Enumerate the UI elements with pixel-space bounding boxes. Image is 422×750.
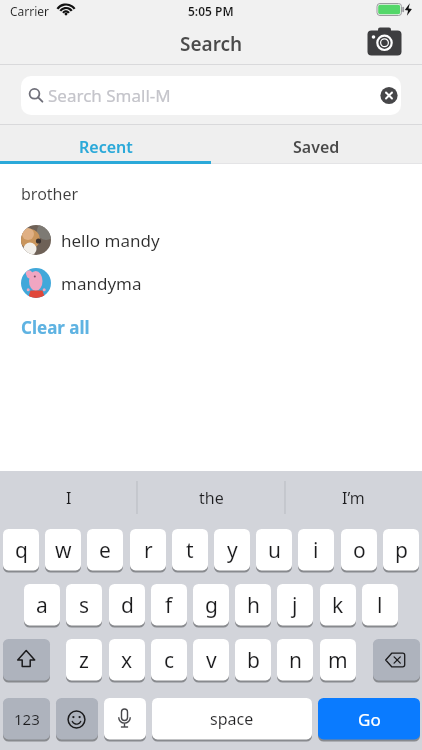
staticText: Carrier <box>10 3 50 19</box>
staticText: I <box>66 487 72 509</box>
button[interactable]: 123 <box>3 698 50 740</box>
button[interactable]: k <box>320 584 356 626</box>
button[interactable]: the <box>137 471 285 525</box>
button[interactable]: d <box>109 584 145 626</box>
button[interactable]: Clear all <box>21 316 141 338</box>
staticText: p <box>395 536 408 565</box>
staticText: h <box>247 591 260 620</box>
staticText: m <box>328 646 348 675</box>
button[interactable]: c <box>151 639 187 681</box>
staticText: Recent <box>79 136 133 158</box>
button[interactable]: Recent <box>0 128 211 165</box>
button[interactable]: i <box>298 529 334 571</box>
button[interactable]: z <box>66 639 102 681</box>
button[interactable]: w <box>45 529 81 571</box>
staticText: u <box>268 536 281 565</box>
button[interactable] <box>364 25 404 59</box>
button[interactable]: space <box>152 698 312 740</box>
button[interactable]: b <box>235 639 271 681</box>
staticText: t <box>186 536 194 565</box>
staticText: r <box>144 536 153 565</box>
button[interactable]: n <box>277 639 313 681</box>
button[interactable]: Go <box>318 698 420 740</box>
button[interactable]: u <box>256 529 292 571</box>
staticText: Saved <box>293 136 340 158</box>
button[interactable]: q <box>3 529 39 571</box>
staticText: k <box>332 591 344 620</box>
button[interactable]: h <box>235 584 271 626</box>
button[interactable] <box>14 222 408 258</box>
staticText: g <box>205 591 218 620</box>
staticText: Go <box>358 708 381 731</box>
button[interactable]: j <box>277 584 313 626</box>
staticText: v <box>206 646 217 675</box>
button[interactable] <box>56 698 98 740</box>
button[interactable] <box>373 639 420 681</box>
button[interactable]: l <box>362 584 398 626</box>
button[interactable]: r <box>130 529 166 571</box>
button[interactable]: x <box>109 639 145 681</box>
staticText: x <box>121 646 133 675</box>
button[interactable]: y <box>214 529 250 571</box>
button[interactable]: g <box>193 584 229 626</box>
button[interactable]: t <box>172 529 208 571</box>
staticText: c <box>164 646 175 675</box>
button[interactable]: I <box>0 471 137 525</box>
button[interactable]: f <box>151 584 187 626</box>
staticText: q <box>15 536 28 565</box>
staticText: y <box>227 536 238 565</box>
staticText: i <box>313 536 319 565</box>
staticText: 5:05 PM <box>188 3 234 19</box>
staticText: Search <box>180 31 243 57</box>
button[interactable]: m <box>320 639 356 681</box>
button[interactable]: v <box>193 639 229 681</box>
button[interactable] <box>21 76 401 115</box>
button[interactable] <box>378 85 400 107</box>
staticText: a <box>36 591 48 620</box>
staticText: hello mandy <box>61 229 160 252</box>
button[interactable] <box>14 265 408 301</box>
staticText: the <box>199 487 224 509</box>
button[interactable]: p <box>383 529 419 571</box>
staticText: s <box>79 591 90 620</box>
button[interactable]: e <box>87 529 123 571</box>
staticText: j <box>292 591 298 620</box>
button[interactable]: Saved <box>211 128 422 165</box>
staticText: l <box>377 591 383 620</box>
staticText: e <box>99 536 111 565</box>
staticText: f <box>165 591 173 620</box>
staticText: 123 <box>14 709 40 729</box>
button[interactable]: a <box>24 584 60 626</box>
staticText: d <box>121 591 134 620</box>
staticText: n <box>289 646 302 675</box>
staticText: space <box>210 708 254 730</box>
staticText: brother <box>21 183 79 203</box>
staticText: mandyma <box>61 272 142 295</box>
staticText: o <box>353 536 366 565</box>
staticText: Clear all <box>21 316 90 338</box>
button[interactable]: o <box>341 529 377 571</box>
staticText: I’m <box>342 487 365 509</box>
button[interactable]: s <box>66 584 102 626</box>
staticText: z <box>79 646 89 675</box>
staticText: Search Small-M <box>48 84 171 107</box>
staticText: b <box>247 646 260 675</box>
button[interactable]: I’m <box>285 471 422 525</box>
button[interactable] <box>104 698 146 740</box>
button[interactable] <box>3 639 50 681</box>
staticText: w <box>55 536 72 565</box>
